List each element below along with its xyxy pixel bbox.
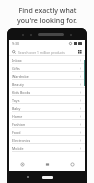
button[interactable]: Gifts (9, 64, 85, 72)
staticText: Gifts (12, 66, 20, 71)
button[interactable]: Search over 1 million products (9, 47, 85, 56)
staticText: Kids Books (12, 90, 31, 95)
button[interactable]: Electronics (9, 136, 85, 144)
button[interactable]: Toys (9, 96, 85, 104)
button[interactable]: Home (9, 157, 35, 171)
button[interactable]: Food (9, 128, 85, 136)
staticText: Toys (12, 98, 20, 103)
button[interactable]: Beauty (9, 80, 85, 88)
staticText: Find exactly what (18, 6, 77, 16)
staticText: Electronics (12, 138, 31, 143)
button[interactable]: Baby (9, 104, 85, 112)
button[interactable]: Kids Books (9, 88, 85, 96)
staticText: Fashion (12, 122, 26, 127)
button[interactable]: Account (60, 157, 85, 171)
staticText: Mobile (12, 146, 24, 151)
button[interactable]: Inbox (9, 56, 85, 64)
staticText: 9:30 (12, 41, 19, 46)
staticText: Home (12, 114, 23, 119)
staticText: you're looking for. (17, 16, 77, 26)
staticText: Beauty (12, 82, 24, 87)
button[interactable]: Mobile (9, 144, 85, 152)
button[interactable]: Fashion (9, 120, 85, 128)
button[interactable]: Home (9, 112, 85, 120)
button[interactable]: Wardrobe (9, 72, 85, 80)
staticText: Food (12, 130, 21, 135)
staticText: Search over 1 million products (18, 50, 65, 54)
staticText: Inbox (12, 58, 22, 63)
staticText: Baby (12, 106, 21, 111)
staticText: Wardrobe (12, 74, 29, 79)
button[interactable]: Shop (35, 157, 60, 171)
